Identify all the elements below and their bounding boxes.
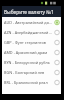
button[interactable]: BYN - Белорусский рубль xyxy=(0,57,64,67)
staticText: GBP - Фунт стерлингов xyxy=(4,40,53,45)
button[interactable]: AUD - Австралийский доллар xyxy=(0,17,64,27)
staticText: Выберите валюту №1 xyxy=(4,9,54,16)
button[interactable]: GBP - Фунт стерлингов xyxy=(0,37,64,47)
staticText: AUD - Австралийский доллар xyxy=(4,20,53,25)
button[interactable]: BRL - Бразильский реал xyxy=(0,77,64,87)
button[interactable]: AZN - Азербайджанский манат xyxy=(0,27,64,37)
staticText: BGN - Болгарский лев xyxy=(4,70,53,75)
button[interactable]: BGN - Болгарский лев xyxy=(0,67,64,77)
staticText: BYN - Белорусский рубль xyxy=(4,60,53,65)
staticText: AMD - Армянский драм xyxy=(4,50,53,55)
staticText: BRL - Бразильский реал xyxy=(4,80,53,85)
staticText: AZN - Азербайджанский манат xyxy=(4,30,53,35)
button[interactable]: AMD - Армянский драм xyxy=(0,47,64,57)
